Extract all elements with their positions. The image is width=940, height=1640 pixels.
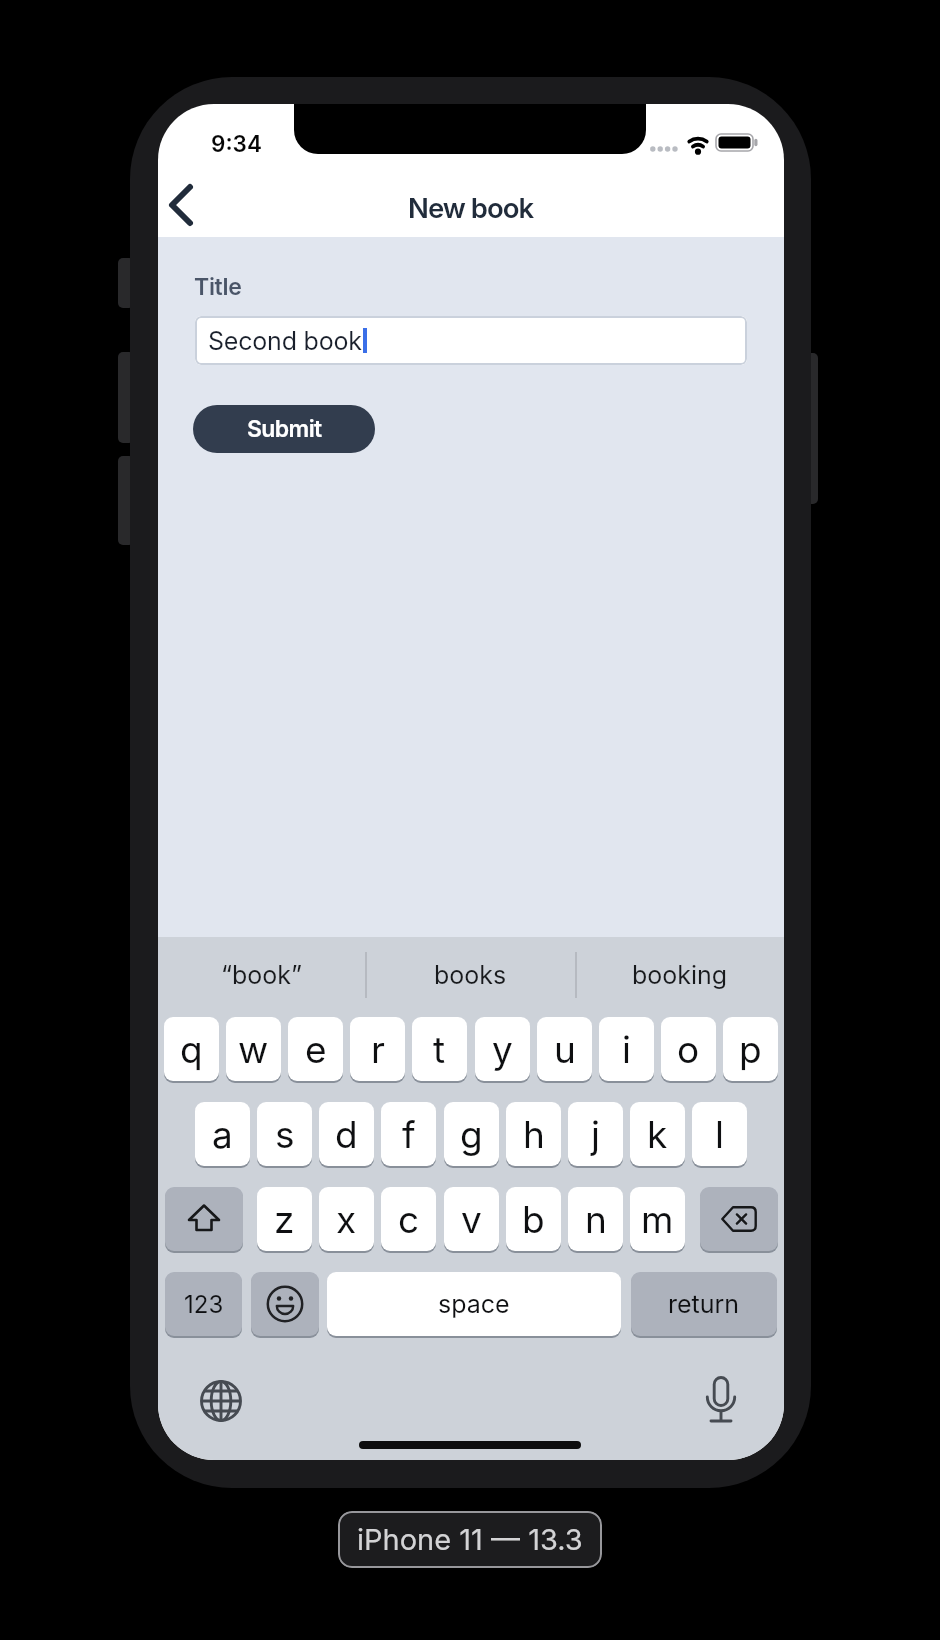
staticText: t bbox=[433, 1027, 446, 1072]
button[interactable]: a bbox=[195, 1102, 250, 1166]
staticText: k bbox=[647, 1112, 668, 1157]
button[interactable]: y bbox=[475, 1017, 530, 1081]
staticText: books bbox=[434, 960, 507, 990]
button[interactable]: e bbox=[288, 1017, 343, 1081]
button[interactable]: Submit bbox=[193, 405, 375, 453]
button[interactable] bbox=[191, 1371, 251, 1431]
staticText: r bbox=[371, 1027, 385, 1072]
staticText: iPhone 11 — 13.3 bbox=[357, 1522, 583, 1557]
staticText: x bbox=[336, 1197, 357, 1242]
button[interactable]: Second book bbox=[195, 316, 747, 365]
staticText: Title bbox=[194, 273, 242, 301]
button[interactable]: space bbox=[327, 1272, 621, 1336]
staticText: s bbox=[275, 1112, 295, 1157]
button[interactable]: k bbox=[630, 1102, 685, 1166]
staticText: e bbox=[305, 1027, 327, 1072]
button[interactable]: booking bbox=[576, 954, 784, 996]
staticText: 9:34 bbox=[211, 130, 262, 157]
button[interactable]: q bbox=[164, 1017, 219, 1081]
staticText: v bbox=[461, 1197, 482, 1242]
button[interactable]: n bbox=[568, 1187, 623, 1251]
staticText: c bbox=[398, 1197, 420, 1242]
staticText: n bbox=[585, 1197, 607, 1242]
button[interactable]: u bbox=[537, 1017, 592, 1081]
staticText: 123 bbox=[184, 1290, 224, 1319]
button[interactable]: books bbox=[367, 954, 574, 996]
button[interactable]: j bbox=[568, 1102, 623, 1166]
button[interactable]: g bbox=[444, 1102, 499, 1166]
staticText: h bbox=[523, 1112, 545, 1157]
button[interactable]: b bbox=[506, 1187, 561, 1251]
button[interactable] bbox=[160, 184, 204, 228]
button[interactable]: r bbox=[350, 1017, 405, 1081]
button[interactable]: t bbox=[412, 1017, 467, 1081]
staticText: y bbox=[492, 1027, 513, 1072]
staticText: m bbox=[641, 1197, 674, 1242]
staticText: b bbox=[522, 1197, 545, 1242]
staticText: g bbox=[460, 1112, 483, 1157]
button[interactable]: w bbox=[226, 1017, 281, 1081]
button[interactable]: i bbox=[599, 1017, 654, 1081]
button[interactable]: x bbox=[319, 1187, 374, 1251]
button[interactable] bbox=[251, 1272, 319, 1336]
button[interactable]: 123 bbox=[165, 1272, 242, 1336]
button[interactable]: iPhone 11 — 13.3 bbox=[338, 1511, 602, 1568]
staticText: a bbox=[212, 1112, 233, 1157]
staticText: j bbox=[591, 1112, 600, 1157]
staticText: z bbox=[274, 1197, 295, 1242]
button[interactable]: c bbox=[381, 1187, 436, 1251]
button[interactable] bbox=[699, 1369, 759, 1429]
button[interactable]: v bbox=[444, 1187, 499, 1251]
button[interactable]: l bbox=[692, 1102, 747, 1166]
button[interactable]: h bbox=[506, 1102, 561, 1166]
button[interactable]: “book” bbox=[158, 954, 365, 996]
staticText: “book” bbox=[221, 960, 303, 990]
staticText: space bbox=[438, 1289, 510, 1319]
staticText: f bbox=[402, 1112, 416, 1157]
button[interactable]: m bbox=[630, 1187, 685, 1251]
staticText: New book bbox=[408, 191, 534, 224]
staticText: u bbox=[554, 1027, 576, 1072]
staticText: Second book bbox=[208, 326, 362, 356]
button[interactable] bbox=[165, 1187, 243, 1251]
button[interactable]: return bbox=[631, 1272, 777, 1336]
staticText: Submit bbox=[247, 415, 322, 443]
button[interactable]: p bbox=[723, 1017, 778, 1081]
staticText: booking bbox=[632, 960, 728, 990]
staticText: o bbox=[677, 1027, 700, 1072]
button[interactable]: d bbox=[319, 1102, 374, 1166]
button[interactable]: s bbox=[257, 1102, 312, 1166]
button[interactable]: z bbox=[257, 1187, 312, 1251]
staticText: w bbox=[238, 1027, 269, 1072]
staticText: d bbox=[335, 1112, 358, 1157]
button[interactable]: f bbox=[381, 1102, 436, 1166]
staticText: return bbox=[668, 1289, 740, 1319]
button[interactable]: o bbox=[661, 1017, 716, 1081]
staticText: q bbox=[180, 1027, 203, 1072]
staticText: l bbox=[715, 1112, 724, 1157]
button[interactable] bbox=[700, 1187, 778, 1251]
staticText: i bbox=[622, 1027, 631, 1072]
staticText: p bbox=[739, 1027, 762, 1072]
